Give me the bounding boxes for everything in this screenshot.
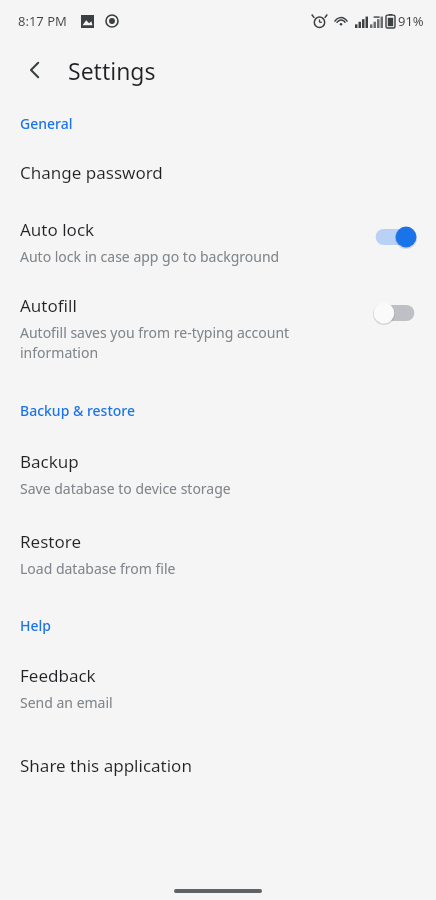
- button[interactable]: Restore: [0, 500, 436, 580]
- staticText: Feedback: [20, 664, 96, 687]
- staticText: Autofill: [20, 294, 77, 317]
- button[interactable]: Auto lock, on: [372, 222, 418, 252]
- staticText: Help: [20, 616, 51, 635]
- staticText: Backup & restore: [20, 401, 135, 420]
- button[interactable]: Autofill: [0, 268, 436, 365]
- staticText: Load database from file: [20, 559, 176, 578]
- staticText: Backup: [20, 450, 79, 473]
- button[interactable]: Change password: [0, 133, 436, 188]
- staticText: Send an email: [20, 693, 113, 712]
- staticText: Change password: [20, 161, 163, 184]
- button[interactable]: Autofill, off: [372, 298, 418, 328]
- staticText: 91%: [398, 12, 424, 30]
- button[interactable]: Back: [14, 49, 56, 91]
- button[interactable]: Auto lock: [0, 188, 436, 268]
- staticText: Auto lock: [20, 218, 95, 241]
- button[interactable]: Backup: [0, 420, 436, 500]
- staticText: Settings: [68, 55, 156, 86]
- staticText: Save database to device storage: [20, 479, 231, 498]
- staticText: Share this application: [20, 754, 192, 777]
- button[interactable]: Feedback: [0, 635, 436, 714]
- staticText: Autofill saves you from re-typing accoun…: [20, 323, 290, 363]
- staticText: Restore: [20, 530, 81, 553]
- button[interactable]: Share this application: [0, 714, 436, 781]
- staticText: 8:17 PM: [18, 12, 67, 30]
- staticText: Auto lock in case app go to background: [20, 247, 280, 266]
- staticText: General: [20, 114, 73, 133]
